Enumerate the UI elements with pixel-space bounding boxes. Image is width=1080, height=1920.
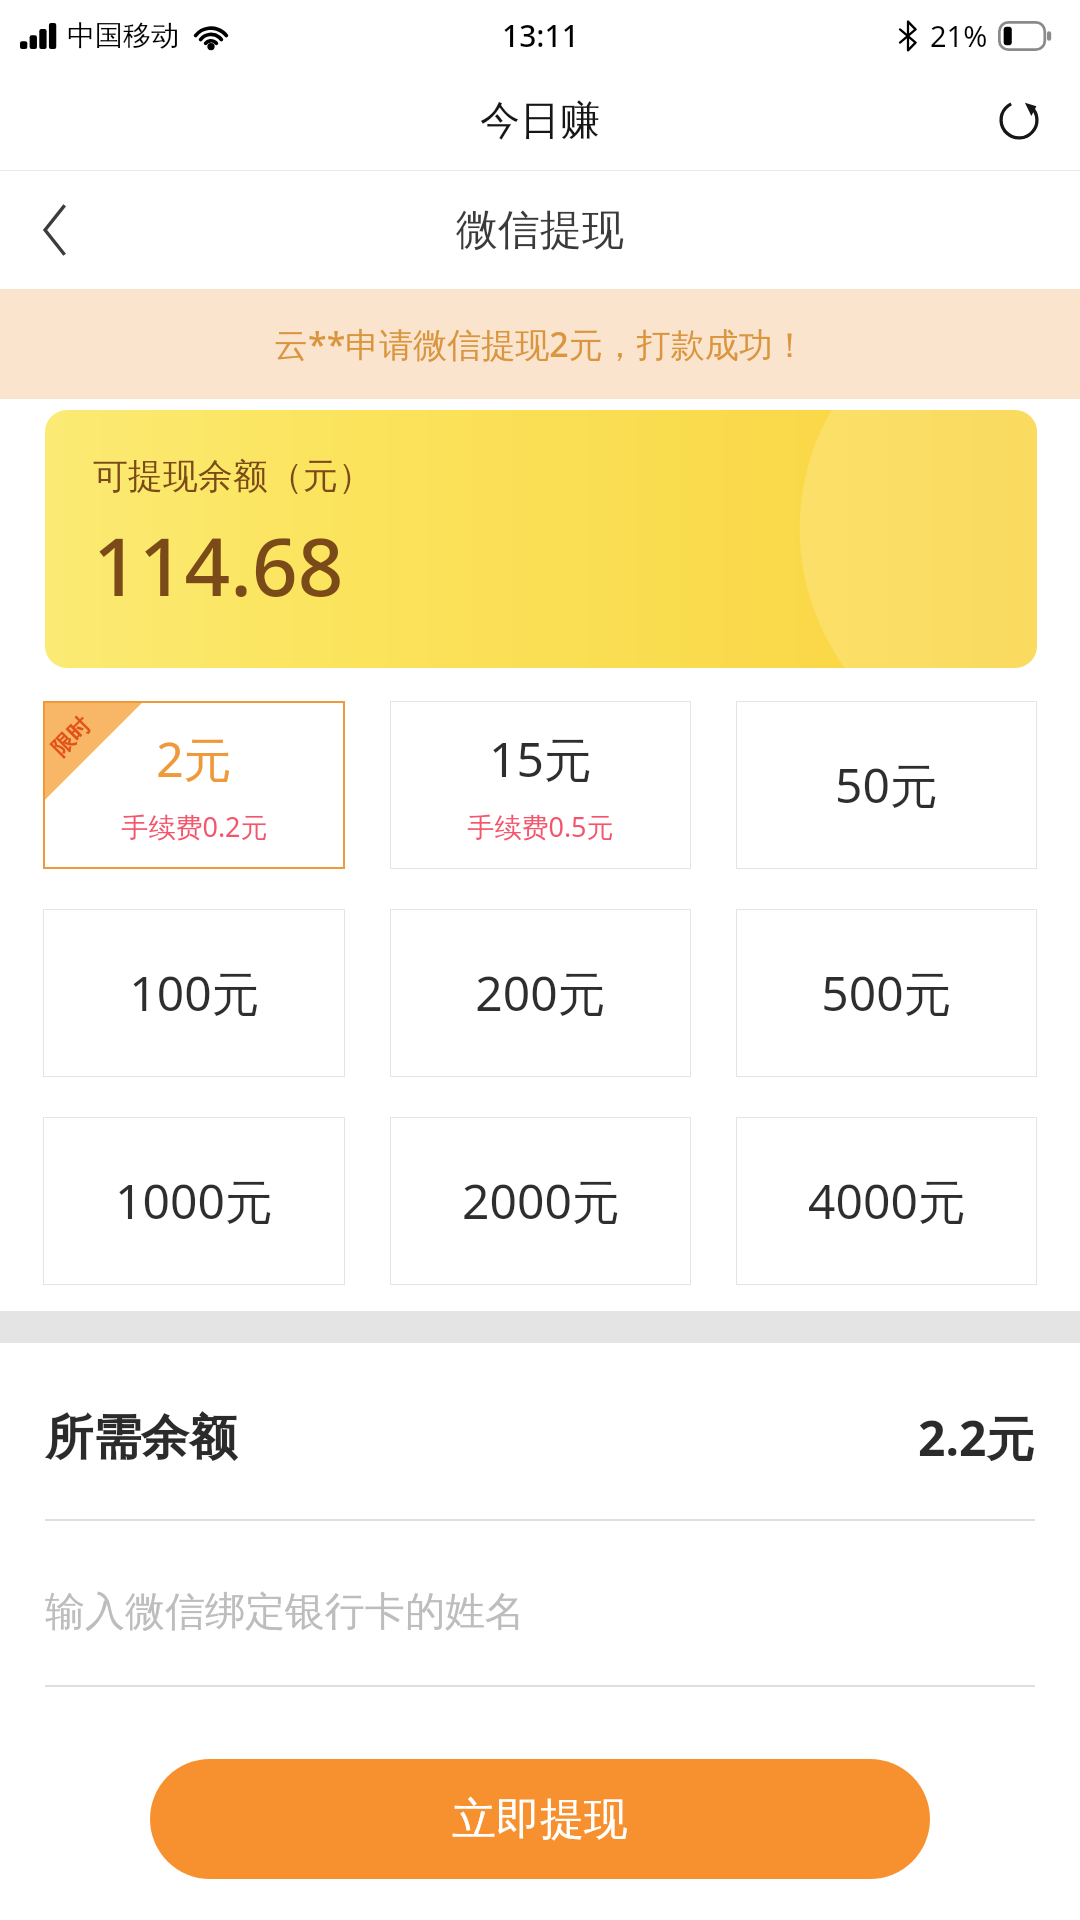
staticText: 1000元 [115, 1168, 273, 1234]
staticText: 云**申请微信提现2元，打款成功！ [274, 321, 807, 367]
staticText: 可提现余额（元） [93, 454, 373, 498]
button[interactable]: 输入微信绑定银行卡的姓名 [45, 1581, 1035, 1641]
staticText: 100元 [129, 960, 260, 1026]
staticText: 2000元 [462, 1168, 620, 1234]
staticText: 15元 [489, 726, 592, 792]
staticText: 限时 [45, 711, 96, 762]
staticText: 2元 [156, 726, 232, 792]
staticText: 手续费0.2元 [121, 808, 268, 845]
staticText: 13:11 [502, 15, 579, 56]
button[interactable]: 4000元 [736, 1117, 1037, 1285]
button[interactable]: 15元 [390, 701, 691, 869]
staticText: 微信提现 [456, 204, 624, 257]
staticText: 114.68 [93, 510, 344, 619]
button[interactable]: 100元 [43, 909, 345, 1077]
staticText: 输入微信绑定银行卡的姓名 [45, 1586, 525, 1636]
button[interactable]: 可提现余额（元） [45, 410, 1037, 668]
staticText: 50元 [835, 752, 938, 818]
staticText: 今日赚 [480, 95, 600, 145]
staticText: 手续费0.5元 [467, 808, 614, 845]
button[interactable]: 50元 [736, 701, 1037, 869]
staticText: 中国移动 [67, 18, 179, 53]
staticText: 4000元 [808, 1168, 966, 1234]
button[interactable]: Back [14, 190, 94, 270]
button[interactable]: 2000元 [390, 1117, 691, 1285]
staticText: 立即提现 [452, 1792, 628, 1847]
button[interactable]: Refresh [984, 85, 1054, 155]
staticText: 500元 [821, 960, 952, 1026]
button[interactable]: 500元 [736, 909, 1037, 1077]
staticText: 200元 [475, 960, 606, 1026]
staticText: 21% [930, 16, 988, 55]
button[interactable]: 1000元 [43, 1117, 345, 1285]
button[interactable]: 限时 [43, 701, 345, 869]
staticText: 所需余额 [45, 1408, 237, 1468]
button[interactable]: 200元 [390, 909, 691, 1077]
button[interactable]: 立即提现 [150, 1759, 930, 1879]
staticText: 2.2元 [918, 1405, 1035, 1471]
